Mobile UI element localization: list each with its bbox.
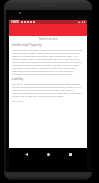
staticText: Intellectual Property [12, 43, 42, 47]
button[interactable]: Home [43, 149, 53, 159]
button[interactable]: Recent apps [65, 149, 75, 159]
staticText: 10:03 [11, 20, 19, 24]
staticText: Liability [12, 77, 24, 81]
staticText: May 2019 [12, 99, 24, 102]
staticText: The material provided by the MIMI App co… [12, 48, 84, 75]
staticText: Terms of use [9, 37, 87, 41]
button[interactable]: Back [21, 149, 31, 159]
staticText: The MIMI App was created with utmost car… [12, 82, 84, 97]
